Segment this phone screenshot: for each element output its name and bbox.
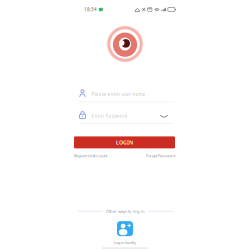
button[interactable]: Log in locally [114,221,136,245]
button[interactable]: LOGIN [74,136,175,148]
button[interactable]: Forgot Password [146,153,175,158]
staticText: Forgot Password [146,153,175,158]
staticText: Other ways to log in [106,208,145,214]
staticText: Registered Account [74,153,107,158]
staticText: Log in locally [114,240,136,245]
staticText: Please enter user name [91,91,145,97]
button[interactable]: Show password [160,112,168,120]
staticText: LOGIN [116,139,133,146]
staticText: Enter Password [91,113,127,119]
staticText: 18:34 [84,6,97,13]
button[interactable]: Registered Account [74,153,107,158]
